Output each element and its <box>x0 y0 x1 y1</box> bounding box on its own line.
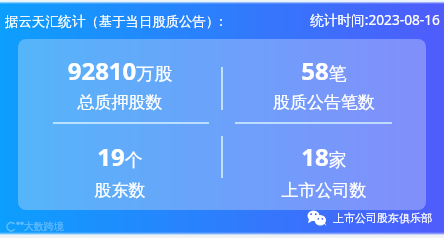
staticText: 92810万股 <box>24 54 216 87</box>
staticText: 总质押股数 <box>24 92 216 113</box>
staticText: 大数跨境 <box>24 220 64 233</box>
button[interactable]: 18家 <box>228 134 420 196</box>
staticText: 18家 <box>228 140 420 173</box>
button[interactable]: 58笔 <box>228 48 420 110</box>
staticText: 股质公告笔数 <box>228 92 420 113</box>
button[interactable]: WeChat <box>304 207 432 229</box>
staticText: 上市公司股东俱乐部 <box>333 211 432 225</box>
staticText: 统计时间:2023-08-16 <box>310 10 440 29</box>
staticText: 上市公司数 <box>228 180 420 201</box>
button[interactable]: 92810万股 <box>24 48 216 110</box>
staticText: 58笔 <box>228 54 420 87</box>
button[interactable]: 据云天汇统计（基于当日股质公告）: <box>5 12 223 30</box>
other: WeChat <box>304 208 330 228</box>
button[interactable]: 统计时间:2023-08-16 <box>310 10 440 29</box>
staticText: 股东数 <box>24 180 216 201</box>
staticText: 19个 <box>24 140 216 173</box>
staticText: 据云天汇统计（基于当日股质公告）: <box>5 12 223 30</box>
button[interactable]: 19个 <box>24 134 216 196</box>
